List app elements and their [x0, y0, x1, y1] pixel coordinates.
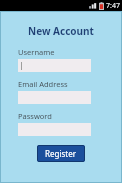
staticText: Email Address [18, 79, 68, 89]
staticText: 7:47 [106, 1, 120, 11]
button[interactable] [18, 59, 91, 72]
staticText: Register [45, 148, 77, 159]
button[interactable]: Register [37, 145, 85, 162]
staticText: Password [18, 111, 52, 121]
staticText: New Account [0, 24, 122, 38]
staticText: Username [18, 47, 55, 57]
